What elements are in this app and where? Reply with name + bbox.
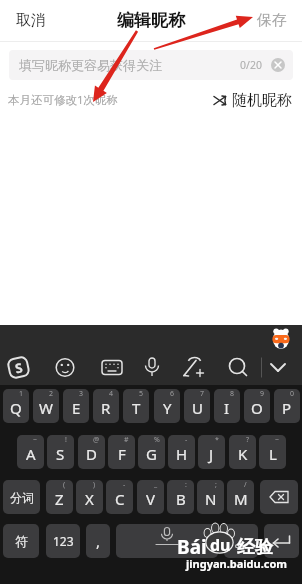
button[interactable]: 填写昵称更容易获得关注 — [9, 50, 293, 80]
button[interactable]: , — [86, 524, 110, 558]
button[interactable]: 9 — [244, 389, 270, 423]
button[interactable]: - — [168, 435, 195, 469]
button[interactable] — [264, 524, 299, 558]
button[interactable]: / — [227, 480, 254, 514]
staticText: ? — [246, 435, 250, 445]
staticText: 0 — [290, 389, 295, 399]
button[interactable]: % — [138, 435, 165, 469]
staticText: 保存 — [257, 11, 287, 30]
button[interactable]: 2 — [33, 389, 59, 423]
button[interactable]: 取消 — [16, 11, 46, 30]
button[interactable]: * — [198, 435, 225, 469]
button[interactable]: 7 — [184, 389, 210, 423]
staticText: S — [56, 444, 65, 464]
staticText: C — [115, 489, 125, 509]
button[interactable]: 3 — [63, 389, 89, 423]
button[interactable]: ~ — [17, 435, 44, 469]
staticText: / — [244, 480, 247, 490]
button[interactable]: 6 — [154, 389, 180, 423]
staticText: , — [96, 531, 101, 551]
button[interactable]: 分词 — [3, 480, 40, 514]
staticText: * — [215, 435, 219, 445]
staticText: Q — [10, 398, 22, 418]
staticText: G — [146, 444, 157, 464]
staticText: 1 — [19, 389, 24, 399]
button[interactable] — [52, 354, 78, 380]
staticText: 填写昵称更容易获得关注 — [19, 57, 162, 73]
staticText: A — [26, 444, 36, 464]
staticText: Y — [163, 398, 172, 418]
button[interactable]: ~ — [259, 435, 286, 469]
button[interactable] — [99, 354, 125, 380]
staticText: X — [85, 489, 94, 509]
button[interactable]: : — [167, 480, 194, 514]
button[interactable]: 4 — [93, 389, 119, 423]
staticText: L — [269, 444, 277, 464]
staticText: H — [176, 444, 188, 464]
staticText: 123 — [53, 533, 74, 549]
staticText: M — [234, 489, 248, 509]
staticText: % — [154, 435, 160, 445]
button[interactable]: 。 — [224, 524, 258, 558]
button[interactable]: 随机昵称 — [213, 91, 292, 110]
button[interactable] — [260, 480, 298, 514]
button[interactable] — [179, 354, 205, 380]
button[interactable]: _ — [137, 480, 164, 514]
button[interactable]: 1 — [3, 389, 29, 423]
button[interactable]: 123 — [46, 524, 80, 558]
staticText: 0/20 — [240, 58, 262, 72]
button[interactable]: # — [108, 435, 135, 469]
button[interactable]: ? — [229, 435, 256, 469]
staticText: S — [13, 358, 25, 378]
staticText: jingyan.baidu.com — [186, 556, 288, 571]
button[interactable]: 0 — [274, 389, 300, 423]
button[interactable]: ; — [197, 480, 224, 514]
staticText: 取消 — [16, 11, 46, 30]
staticText: P — [282, 398, 292, 418]
staticText: Bái — [177, 534, 207, 560]
staticText: 3 — [79, 389, 84, 399]
button[interactable]: 保存 — [257, 11, 287, 30]
button[interactable]: 符 — [3, 524, 39, 558]
staticText: ) — [93, 480, 96, 490]
button[interactable]: ( — [46, 480, 73, 514]
button[interactable] — [225, 354, 251, 380]
button[interactable]: ! — [47, 435, 74, 469]
button[interactable] — [116, 524, 218, 558]
staticText: 经验 — [237, 536, 273, 559]
staticText: B — [176, 489, 186, 509]
staticText: ~ — [33, 435, 38, 445]
staticText: 5 — [139, 389, 144, 399]
staticText: W — [39, 398, 53, 418]
staticText: _ — [154, 480, 158, 490]
staticText: ! — [65, 435, 67, 445]
staticText: Z — [55, 489, 64, 509]
button[interactable] — [272, 329, 290, 349]
button[interactable] — [139, 354, 165, 380]
staticText: 。 — [234, 532, 249, 551]
staticText: 本月还可修改1次昵称 — [8, 92, 119, 108]
staticText: - — [123, 480, 126, 490]
staticText: 分词 — [10, 490, 34, 505]
staticText: ~ — [275, 435, 280, 445]
button[interactable]: ) — [76, 480, 103, 514]
button[interactable]: @ — [78, 435, 105, 469]
button[interactable]: 5 — [123, 389, 149, 423]
button[interactable]: 8 — [214, 389, 240, 423]
staticText: 9 — [260, 389, 265, 399]
staticText: E — [72, 398, 81, 418]
staticText: I — [224, 398, 230, 418]
staticText: : — [185, 480, 187, 490]
button[interactable]: S — [6, 355, 31, 380]
staticText: D — [86, 444, 97, 464]
staticText: 2 — [49, 389, 54, 399]
button[interactable] — [271, 58, 285, 72]
staticText: O — [251, 398, 263, 418]
button[interactable] — [265, 354, 291, 380]
staticText: 8 — [230, 389, 235, 399]
staticText: du — [210, 534, 231, 556]
staticText: ( — [63, 480, 66, 490]
staticText: N — [205, 489, 217, 509]
staticText: 编辑昵称 — [117, 10, 185, 31]
button[interactable]: - — [106, 480, 133, 514]
